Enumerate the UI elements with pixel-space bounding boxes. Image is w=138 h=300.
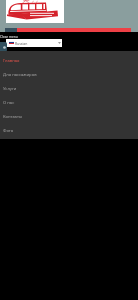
button[interactable]: Language Russian <box>6 39 62 47</box>
button[interactable]: Контакты <box>0 110 138 124</box>
button[interactable]: Главная <box>0 54 138 68</box>
button[interactable]: Close menu <box>0 35 18 39</box>
button[interactable]: Accessibility <box>0 42 7 52</box>
button[interactable]: Услуги <box>0 82 138 96</box>
button[interactable]: Для пассажиров <box>0 68 138 82</box>
staticText: Главная <box>3 58 20 64</box>
button[interactable]: О нас <box>0 96 138 110</box>
staticText: Фото <box>3 128 14 134</box>
staticText: Контакты <box>3 114 23 120</box>
staticText: Russian <box>15 41 28 46</box>
staticText: Для пассажиров <box>3 72 37 78</box>
button[interactable]: Фото <box>0 124 138 138</box>
button[interactable]: Home logo <box>6 0 64 23</box>
staticText: Close menu <box>0 35 18 39</box>
staticText: Услуги <box>3 86 17 92</box>
staticText: О нас <box>3 100 15 106</box>
